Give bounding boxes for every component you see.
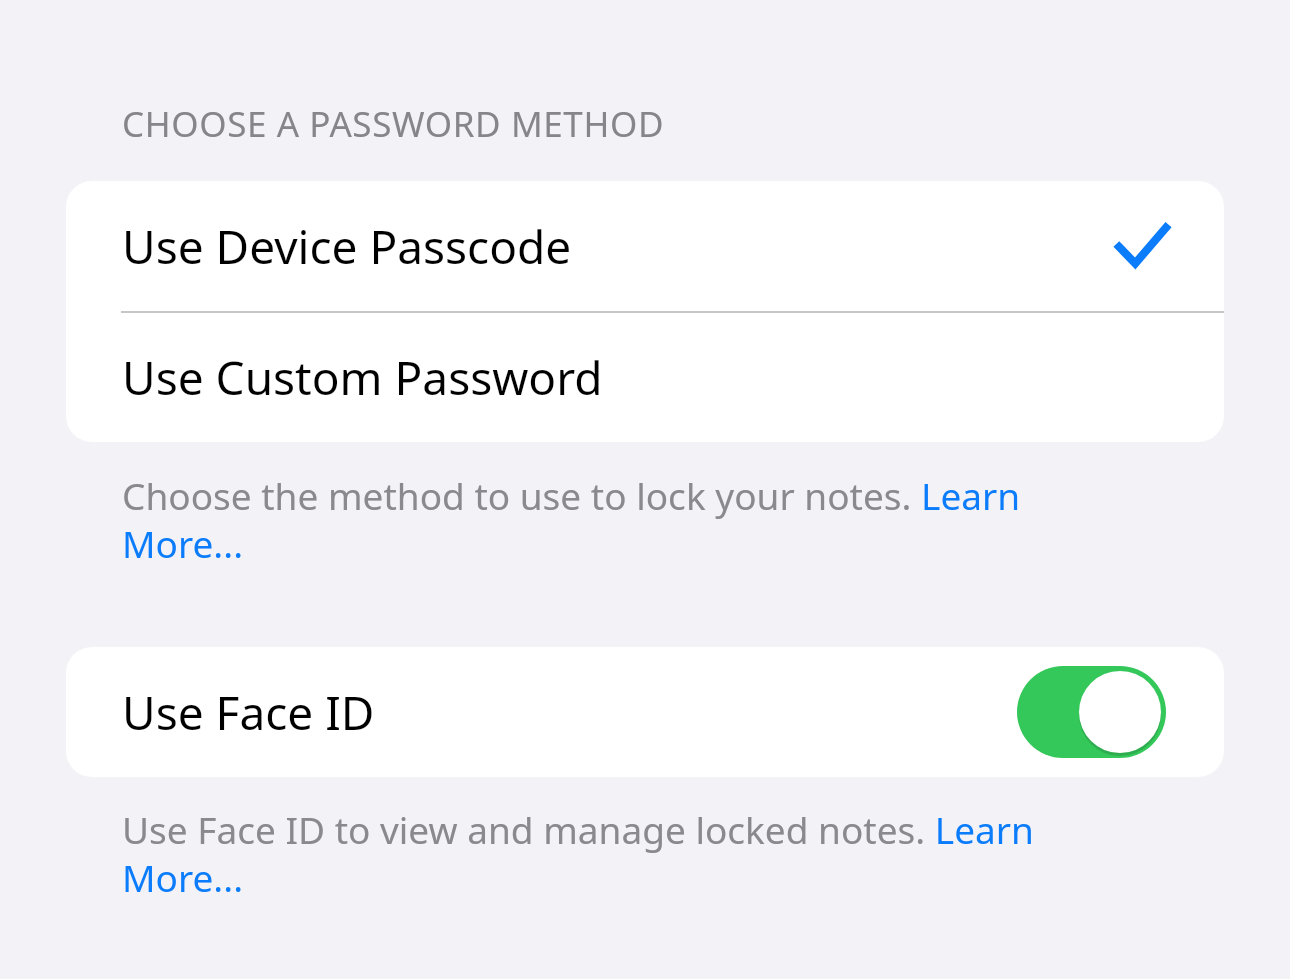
staticText: Choose the method to use to lock your no… [122,470,1080,569]
staticText: Use Face ID [122,681,375,744]
staticText: Use Device Passcode [122,215,572,278]
staticText: Use Face ID to view and manage locked no… [122,804,1080,903]
button[interactable]: Use Custom Password [66,313,1224,442]
other: Selected [1116,223,1168,269]
button[interactable]: Use Device Passcode [66,181,1224,311]
button[interactable]: Use Face ID toggle [1017,666,1166,758]
button[interactable]: Use Face ID [66,647,1224,777]
staticText: Use Custom Password [122,346,603,409]
staticText: CHOOSE A PASSWORD METHOD [122,100,665,148]
